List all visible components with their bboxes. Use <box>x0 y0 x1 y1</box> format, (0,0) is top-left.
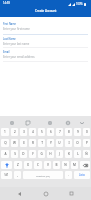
button[interactable]: Recent apps <box>65 187 78 200</box>
button[interactable]: S <box>11 150 18 158</box>
button[interactable]: X <box>24 161 32 169</box>
button[interactable]: 0 <box>83 128 90 136</box>
button[interactable]: T <box>38 139 45 147</box>
staticText: Ñ <box>85 152 88 156</box>
button[interactable]: F <box>29 150 36 158</box>
button[interactable]: Settings <box>7 118 16 127</box>
button[interactable]: I <box>65 139 72 147</box>
staticText: F <box>32 152 34 156</box>
staticText: N <box>64 163 67 167</box>
staticText: 5 <box>41 130 43 134</box>
staticText: Y <box>50 141 52 145</box>
button[interactable]: Ñ <box>83 150 90 158</box>
button[interactable]: R <box>29 139 36 147</box>
staticText: B <box>55 163 58 167</box>
staticText: 2 <box>14 130 16 134</box>
staticText: 100% <box>76 2 83 6</box>
button[interactable]: !#1 <box>1 171 12 179</box>
button[interactable]: E <box>20 139 27 147</box>
staticText: W <box>13 141 16 145</box>
button[interactable]: J <box>56 150 63 158</box>
button[interactable]: 4 <box>29 128 36 136</box>
button[interactable]: Español (ES) <box>23 171 63 179</box>
button[interactable]: , <box>14 171 21 179</box>
button[interactable]: Y <box>47 139 54 147</box>
staticText: A <box>4 152 7 156</box>
button[interactable]: V <box>44 161 51 169</box>
staticText: 14:59 <box>3 1 10 5</box>
button[interactable]: Translate <box>63 118 72 127</box>
staticText: Q <box>4 141 7 145</box>
staticText: Enter your last name <box>3 42 30 46</box>
button[interactable]: Backspace <box>80 161 90 169</box>
button[interactable]: 5 <box>38 128 45 136</box>
button[interactable]: B <box>53 161 60 169</box>
staticText: Español (ES) <box>36 174 50 177</box>
button[interactable]: 1 <box>1 128 9 136</box>
button[interactable]: Enter <box>74 171 90 179</box>
staticText: U <box>58 141 61 145</box>
staticText: 7 <box>59 130 61 134</box>
button[interactable]: 9 <box>74 128 81 136</box>
button[interactable]: K <box>65 150 72 158</box>
staticText: 0 <box>86 130 88 134</box>
staticText: L <box>77 152 79 156</box>
staticText: D <box>22 152 25 156</box>
button[interactable]: W <box>11 139 18 147</box>
button[interactable]: L <box>74 150 81 158</box>
button[interactable]: Q <box>1 139 9 147</box>
staticText: H <box>49 152 52 156</box>
button[interactable]: 6 <box>47 128 54 136</box>
staticText: 8 <box>68 130 70 134</box>
button[interactable]: Last Name <box>3 35 88 48</box>
staticText: T <box>41 141 43 145</box>
staticText: R <box>32 141 34 145</box>
button[interactable]: A <box>1 150 9 158</box>
button[interactable]: Shift <box>1 161 12 169</box>
button[interactable]: O <box>74 139 81 147</box>
button[interactable]: C <box>34 161 42 169</box>
button[interactable]: P <box>83 139 90 147</box>
button[interactable]: 2 <box>11 128 18 136</box>
button[interactable]: G <box>38 150 45 158</box>
button[interactable]: M <box>71 161 78 169</box>
staticText: 3 <box>23 130 25 134</box>
button[interactable]: N <box>62 161 69 169</box>
staticText: S <box>14 152 16 156</box>
staticText: P <box>86 141 88 145</box>
staticText: I <box>68 141 70 145</box>
staticText: Enter your first name <box>3 27 30 31</box>
button[interactable]: 3 <box>20 128 27 136</box>
staticText: G <box>40 152 43 156</box>
button[interactable]: Back <box>13 187 26 200</box>
button[interactable]: H <box>47 150 54 158</box>
staticText: Z <box>17 163 19 167</box>
button[interactable]: Collapse <box>77 118 86 127</box>
button[interactable]: . <box>65 171 72 179</box>
staticText: 4 <box>32 130 34 134</box>
staticText: . <box>68 173 69 177</box>
staticText: Email <box>3 50 10 53</box>
button[interactable]: 8 <box>65 128 72 136</box>
staticText: , <box>17 173 18 177</box>
button[interactable]: U <box>56 139 63 147</box>
staticText: M <box>73 163 76 167</box>
staticText: 6 <box>50 130 52 134</box>
staticText: Create Account <box>35 9 57 13</box>
button[interactable]: First Name <box>3 17 88 35</box>
button[interactable]: Home <box>39 187 52 200</box>
staticText: First Name <box>3 22 17 25</box>
staticText: O <box>76 141 79 145</box>
staticText: V <box>47 163 49 167</box>
button[interactable]: D <box>20 150 27 158</box>
button[interactable]: Z <box>14 161 22 169</box>
staticText: K <box>68 152 70 156</box>
button[interactable]: More <box>45 118 54 127</box>
staticText: J <box>59 152 60 156</box>
staticText: Enter your email address <box>3 55 35 59</box>
button[interactable]: Stickers <box>23 118 32 127</box>
button[interactable]: 7 <box>56 128 63 136</box>
staticText: !#1 <box>4 173 9 177</box>
button[interactable]: Email <box>3 48 88 62</box>
staticText: Listo <box>79 173 85 177</box>
